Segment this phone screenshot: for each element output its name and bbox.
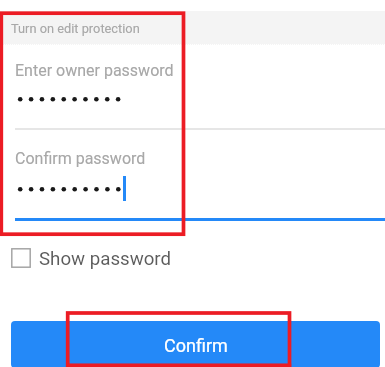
button[interactable]: Turn on edit protection	[0, 11, 385, 45]
button[interactable]: Enter owner password field	[0, 50, 385, 128]
button[interactable]: Show password	[0, 244, 172, 274]
staticText: Show password	[39, 248, 172, 270]
staticText: Turn on edit protection	[11, 21, 140, 36]
button[interactable]: Confirm	[11, 321, 380, 367]
staticText: Confirm	[164, 335, 228, 356]
staticText: Confirm password	[15, 149, 146, 168]
staticText: Enter owner password	[15, 61, 174, 80]
button[interactable]: Confirm password field	[0, 138, 385, 221]
